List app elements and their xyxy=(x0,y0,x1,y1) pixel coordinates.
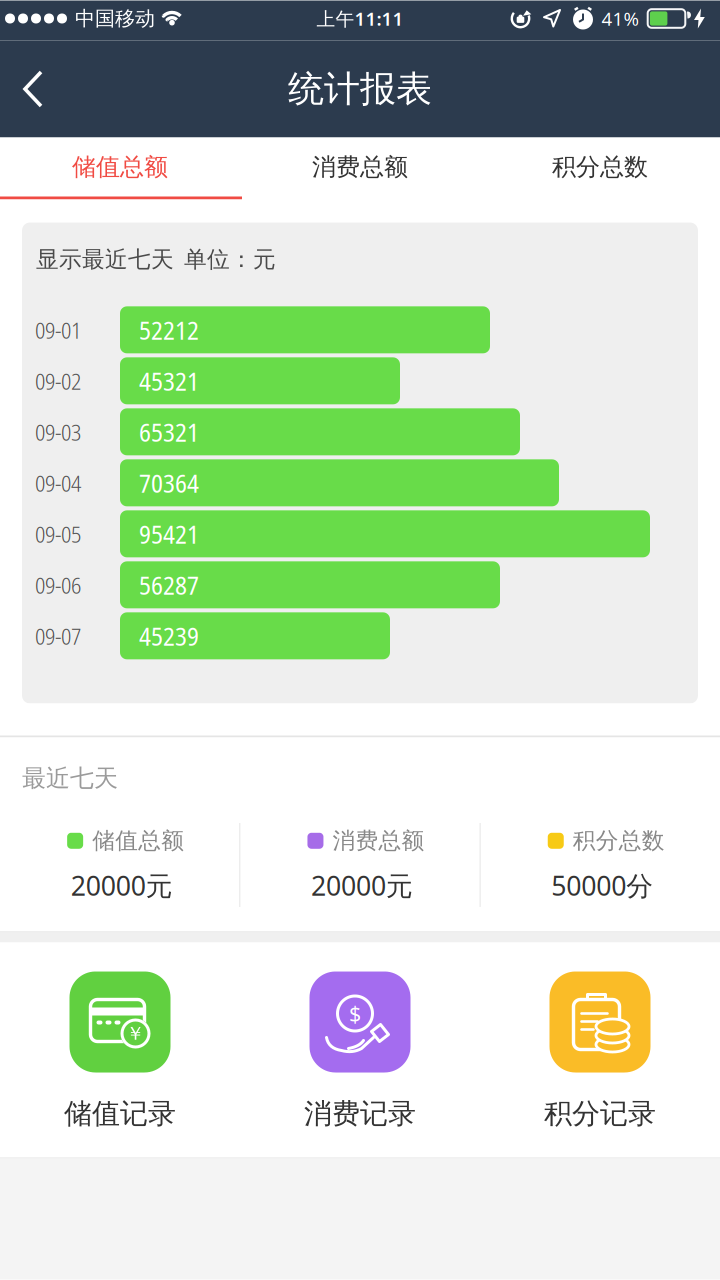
staticText: 储值记录 xyxy=(64,1096,176,1131)
staticText: 45239 xyxy=(139,619,199,653)
staticText: 20000元 xyxy=(311,868,413,903)
button[interactable]: 积分记录 xyxy=(480,971,720,1131)
staticText: 消费记录 xyxy=(304,1096,416,1131)
staticText: 41% xyxy=(601,6,639,31)
staticText: 最近七天 xyxy=(22,763,118,793)
staticText: 52212 xyxy=(139,313,199,347)
button[interactable]: 储值总额 xyxy=(0,137,240,196)
staticText: 20000元 xyxy=(71,868,173,903)
button[interactable]: Back xyxy=(0,49,63,129)
staticText: 70364 xyxy=(139,466,199,500)
staticText: 显示最近七天 xyxy=(36,245,174,273)
staticText: 积分总数 xyxy=(552,152,648,182)
staticText: 09-05 xyxy=(35,518,81,549)
staticText: 消费总额 xyxy=(332,827,424,855)
staticText: 95421 xyxy=(139,517,199,551)
staticText: 储值总额 xyxy=(72,152,168,182)
staticText: 09-07 xyxy=(35,620,81,651)
button[interactable]: 消费总额 xyxy=(240,137,480,196)
staticText: 65321 xyxy=(139,415,199,449)
staticText: 09-03 xyxy=(35,416,81,447)
staticText: 积分记录 xyxy=(544,1096,656,1131)
staticText: 上午11:11 xyxy=(316,6,403,31)
button[interactable]: 积分总数 xyxy=(480,137,720,196)
staticText: 09-02 xyxy=(35,365,81,396)
staticText: 中国移动 xyxy=(75,6,155,31)
staticText: 09-06 xyxy=(35,569,81,600)
staticText: 单位：元 xyxy=(184,245,276,273)
staticText: 09-01 xyxy=(35,314,81,345)
staticText: 45321 xyxy=(139,364,199,398)
button[interactable]: ￥ xyxy=(0,971,240,1131)
staticText: 56287 xyxy=(139,568,199,602)
staticText: 储值总额 xyxy=(92,827,184,855)
button[interactable]: $ xyxy=(240,971,480,1131)
staticText: 积分总数 xyxy=(573,827,665,855)
staticText: 消费总额 xyxy=(312,152,408,182)
staticText: 统计报表 xyxy=(288,67,432,111)
staticText: 09-04 xyxy=(35,467,81,498)
staticText: $ xyxy=(349,999,361,1028)
staticText: 50000分 xyxy=(551,868,653,903)
staticText: ￥ xyxy=(126,1022,145,1045)
